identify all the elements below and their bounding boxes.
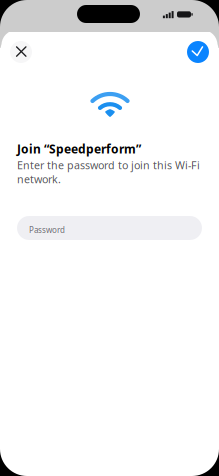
staticText: Join “Speedperform” bbox=[17, 141, 141, 157]
button[interactable]: Join bbox=[187, 41, 209, 63]
button[interactable]: Close bbox=[10, 41, 32, 63]
staticText: Password bbox=[29, 225, 65, 235]
button[interactable]: Password bbox=[17, 216, 202, 240]
staticText: Enter the password to join this Wi-Fi ne… bbox=[17, 158, 200, 186]
